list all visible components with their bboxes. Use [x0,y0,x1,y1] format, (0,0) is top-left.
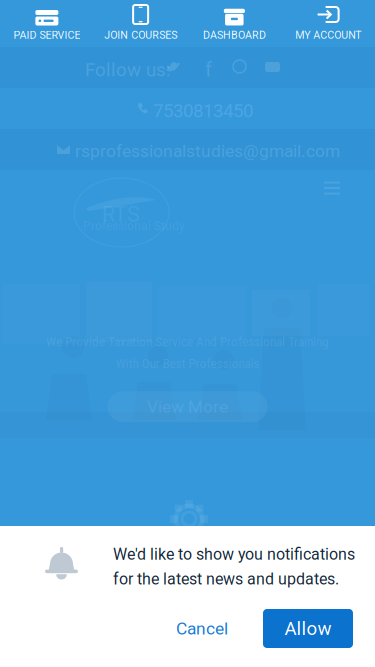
staticText: MY ACCOUNT [295,29,361,41]
staticText: We Provide Taxation Service And Professi… [46,334,329,350]
button[interactable]: Cancel [160,609,244,648]
button[interactable]: DASHBOARD [187,0,281,47]
staticText: Cancel [176,618,228,639]
staticText: PAID SERVICE [13,29,80,41]
staticText: DASHBOARD [203,29,266,41]
staticText: Allow [284,618,331,639]
staticText: JOIN COURSES [104,29,177,41]
staticText: 7530813450 [153,100,253,122]
button[interactable]: Allow [263,609,353,648]
staticText: View More [147,397,228,417]
staticText: With Our Best Professionals [115,356,259,371]
button[interactable]: Menu [317,173,347,203]
staticText: We'd like to show you notifications [113,545,355,564]
staticText: Professional Study [83,219,185,233]
staticText: RTS [102,202,140,227]
staticText: rsprofessionalstudies@gmail.com [75,141,340,161]
button[interactable]: MY ACCOUNT [281,0,375,47]
staticText: f [205,58,212,81]
button[interactable]: JOIN COURSES [94,0,188,47]
staticText: for the latest news and updates. [113,570,339,589]
button[interactable]: View More [107,391,267,422]
staticText: Follow us: [85,59,171,81]
button[interactable]: PAID SERVICE [0,0,94,47]
